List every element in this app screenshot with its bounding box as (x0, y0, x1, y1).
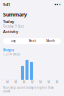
staticText: Tuesday, 9 Sept (3, 25, 24, 28)
staticText: Month (46, 39, 55, 43)
staticText: M (48, 80, 50, 84)
staticText: Week (28, 39, 35, 43)
staticText: M (23, 80, 25, 84)
button[interactable]: Month (41, 39, 60, 43)
staticText: M (14, 80, 16, 84)
button[interactable]: Day (4, 39, 23, 43)
staticText: M (6, 80, 8, 84)
staticText: Day (11, 39, 15, 43)
staticText: M (31, 80, 33, 84)
staticText: 7,214 steps (3, 52, 20, 56)
button[interactable]: Week (23, 39, 41, 43)
staticText: Activity (3, 29, 18, 34)
staticText: Today (3, 19, 14, 24)
staticText: M (39, 80, 41, 84)
staticText: 9:41 (3, 2, 10, 7)
staticText: Summary (3, 11, 27, 18)
staticText: Steps (3, 47, 14, 52)
staticText: Your step count today is higher than usu… (3, 86, 54, 93)
staticText: M (56, 80, 58, 84)
